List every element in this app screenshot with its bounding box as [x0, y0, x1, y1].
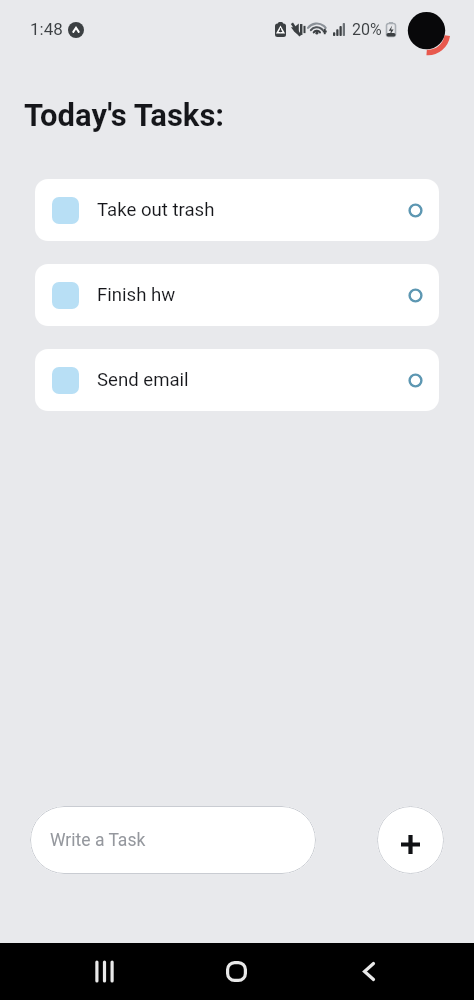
button[interactable]: Task colour: [52, 197, 79, 224]
button[interactable]: Add task: [377, 806, 444, 874]
button[interactable]: Mark Send email complete: [408, 373, 423, 388]
button[interactable]: Task colour: [52, 282, 79, 309]
staticText: Finish hw: [97, 284, 176, 306]
button[interactable]: Write a Task: [30, 806, 316, 874]
button[interactable]: Home: [206, 943, 266, 1000]
staticText: 20%: [352, 20, 382, 39]
button[interactable]: Task colour: [35, 349, 439, 411]
button[interactable]: Task colour: [52, 367, 79, 394]
button[interactable]: Task colour: [35, 264, 439, 326]
staticText: 1:48: [30, 19, 63, 39]
staticText: Write a Task: [50, 830, 146, 851]
button[interactable]: Mark Take out trash complete: [408, 203, 423, 218]
button[interactable]: Back: [339, 943, 399, 1000]
button[interactable]: Recent apps: [74, 943, 134, 1000]
staticText: Today's Tasks:: [24, 97, 225, 133]
button[interactable]: Task colour: [35, 179, 439, 241]
button[interactable]: Mark Finish hw complete: [408, 288, 423, 303]
staticText: Send email: [97, 369, 189, 391]
staticText: Take out trash: [97, 199, 215, 221]
